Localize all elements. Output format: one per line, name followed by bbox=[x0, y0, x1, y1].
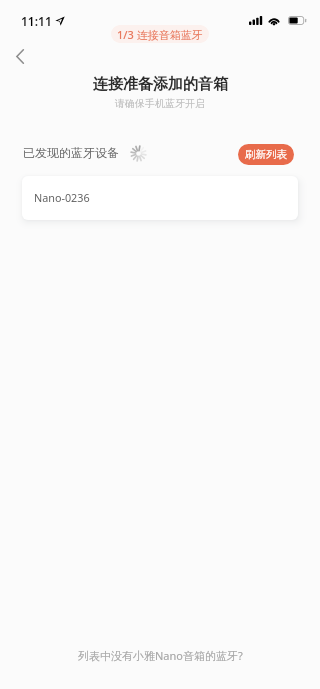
staticText: 已发现的蓝牙设备 bbox=[23, 145, 119, 160]
button[interactable]: 列表中没有小雅Nano音箱的蓝牙? bbox=[70, 644, 251, 667]
staticText: Nano-0236 bbox=[34, 190, 90, 205]
staticText: 刷新列表 bbox=[245, 148, 287, 161]
staticText: 1/3 连接音箱蓝牙 bbox=[117, 27, 203, 42]
button[interactable]: Back bbox=[4, 40, 36, 72]
staticText: 请确保手机蓝牙开启 bbox=[115, 97, 205, 110]
staticText: 11:11 bbox=[21, 13, 52, 29]
staticText: 列表中没有小雅Nano音箱的蓝牙? bbox=[78, 648, 243, 663]
button[interactable]: 1/3 连接音箱蓝牙 bbox=[111, 25, 209, 43]
button[interactable]: 刷新列表 bbox=[238, 144, 294, 165]
button[interactable]: Nano-0236 bbox=[22, 176, 298, 220]
staticText: 连接准备添加的音箱 bbox=[93, 75, 228, 94]
